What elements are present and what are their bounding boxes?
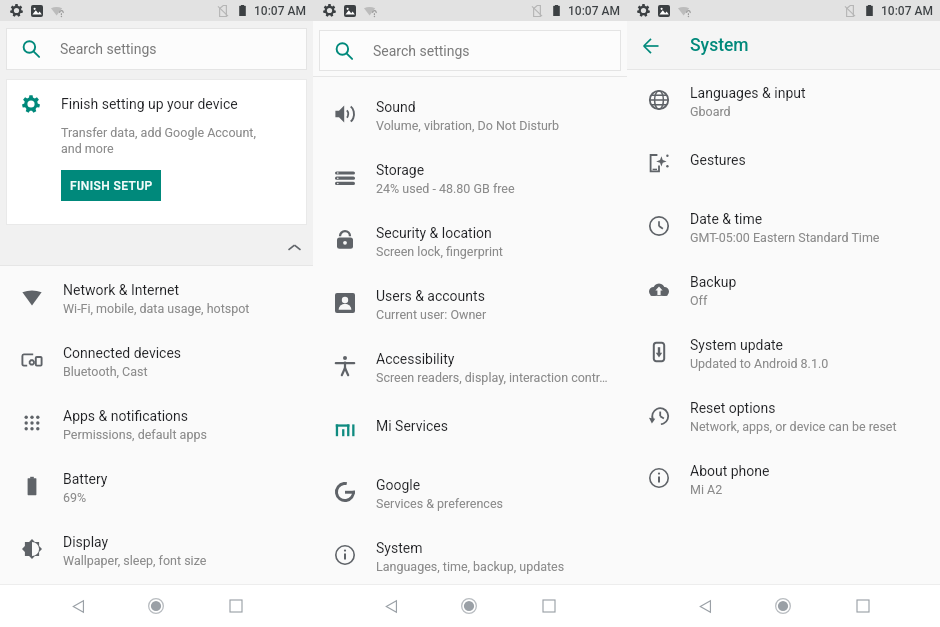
button[interactable]: Back <box>371 586 411 626</box>
staticText: Mi A2 <box>690 482 723 497</box>
button[interactable]: Navigate up <box>627 21 671 69</box>
staticText: GMT-05:00 Eastern Standard Time <box>690 230 880 245</box>
button[interactable]: Recent apps <box>843 586 883 626</box>
staticText: Screen readers, display, interaction con… <box>376 370 608 385</box>
button[interactable]: System update <box>627 322 940 385</box>
staticText: Screen lock, fingerprint <box>376 244 503 259</box>
button[interactable]: Network & Internet <box>0 267 313 330</box>
staticText: 10:07 AM <box>881 4 933 18</box>
staticText: Current user: Owner <box>376 307 487 322</box>
button[interactable]: Display <box>0 519 313 582</box>
button[interactable]: Home <box>449 586 489 626</box>
staticText: Updated to Android 8.1.0 <box>690 356 829 371</box>
staticText: Google <box>376 477 421 493</box>
staticText: Users & accounts <box>376 288 485 304</box>
staticText: Wi-Fi, mobile, data usage, hotspot <box>63 301 250 316</box>
button[interactable]: Back <box>58 586 98 626</box>
staticText: Network & Internet <box>63 282 180 298</box>
staticText: System <box>376 540 423 556</box>
staticText: Off <box>690 293 708 308</box>
button[interactable]: Storage <box>313 147 627 210</box>
button[interactable]: FINISH SETUP <box>61 170 161 201</box>
button[interactable]: Reset options <box>627 385 940 448</box>
button[interactable]: Battery <box>0 456 313 519</box>
button[interactable]: Back <box>685 586 725 626</box>
button[interactable]: System <box>313 525 627 588</box>
staticText: Storage <box>376 162 425 178</box>
staticText: Reset options <box>690 400 776 416</box>
button[interactable]: Google <box>313 462 627 525</box>
button[interactable]: Backup <box>627 259 940 322</box>
staticText: 10:07 AM <box>254 4 306 18</box>
staticText: System <box>690 35 749 56</box>
staticText: Finish setting up your device <box>61 96 238 112</box>
staticText: Date & time <box>690 211 763 227</box>
staticText: Backup <box>690 274 737 290</box>
staticText: Services & preferences <box>376 496 503 511</box>
staticText: Battery <box>63 471 108 487</box>
staticText: Transfer data, add Google Account, and m… <box>61 125 256 157</box>
staticText: Search settings <box>60 41 157 57</box>
staticText: Gestures <box>690 152 746 168</box>
button[interactable]: Languages & input <box>627 70 940 133</box>
staticText: 10:07 AM <box>568 4 620 18</box>
staticText: System update <box>690 337 784 353</box>
staticText: Connected devices <box>63 345 182 361</box>
button[interactable]: Home <box>763 586 803 626</box>
button[interactable]: Search settings <box>6 28 307 70</box>
button[interactable]: Finish setting up your device <box>6 79 307 225</box>
button[interactable]: Recent apps <box>529 586 569 626</box>
button[interactable]: Connected devices <box>0 330 313 393</box>
staticText: Mi Services <box>376 418 448 434</box>
staticText: Sound <box>376 99 416 115</box>
button[interactable]: Home <box>136 586 176 626</box>
button[interactable]: Apps & notifications <box>0 393 313 456</box>
staticText: Bluetooth, Cast <box>63 364 148 379</box>
button[interactable]: Search settings <box>319 30 621 71</box>
staticText: FINISH SETUP <box>70 179 153 193</box>
staticText: Wallpaper, sleep, font size <box>63 553 207 568</box>
button[interactable]: Security & location <box>313 210 627 273</box>
button[interactable]: Recent apps <box>216 586 256 626</box>
button[interactable]: Date & time <box>627 196 940 259</box>
staticText: Languages & input <box>690 85 806 101</box>
staticText: Accessibility <box>376 351 455 367</box>
button[interactable]: Sound <box>313 84 627 147</box>
staticText: 69% <box>63 490 87 505</box>
staticText: Network, apps, or device can be reset <box>690 419 897 434</box>
button[interactable]: Mi Services <box>313 399 627 462</box>
staticText: Search settings <box>373 43 470 59</box>
staticText: Display <box>63 534 109 550</box>
staticText: Permissions, default apps <box>63 427 207 442</box>
staticText: About phone <box>690 463 770 479</box>
staticText: 24% used - 48.80 GB free <box>376 181 515 196</box>
button[interactable]: Accessibility <box>313 336 627 399</box>
staticText: Security & location <box>376 225 492 241</box>
button[interactable]: Collapse suggestions <box>0 225 313 265</box>
button[interactable]: About phone <box>627 448 940 511</box>
staticText: Gboard <box>690 104 731 119</box>
staticText: Languages, time, backup, updates <box>376 559 565 574</box>
button[interactable]: Gestures <box>627 133 940 196</box>
staticText: Apps & notifications <box>63 408 189 424</box>
button[interactable]: Users & accounts <box>313 273 627 336</box>
staticText: Volume, vibration, Do Not Disturb <box>376 118 560 133</box>
